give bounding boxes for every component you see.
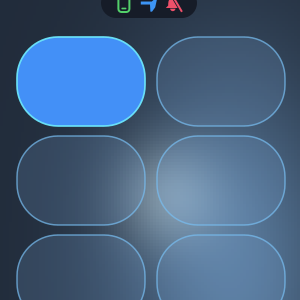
button[interactable]: Battery xyxy=(157,235,285,300)
button[interactable]: Do Not Disturb xyxy=(17,235,145,300)
button[interactable]: Airplane Mode xyxy=(157,37,285,126)
button[interactable]: Water Lock xyxy=(157,136,285,225)
button[interactable]: Theater Mode xyxy=(17,136,145,225)
button[interactable]: Silent Mode xyxy=(17,37,145,126)
button[interactable]: Status: battery, airplane mode on, silen… xyxy=(101,0,197,18)
